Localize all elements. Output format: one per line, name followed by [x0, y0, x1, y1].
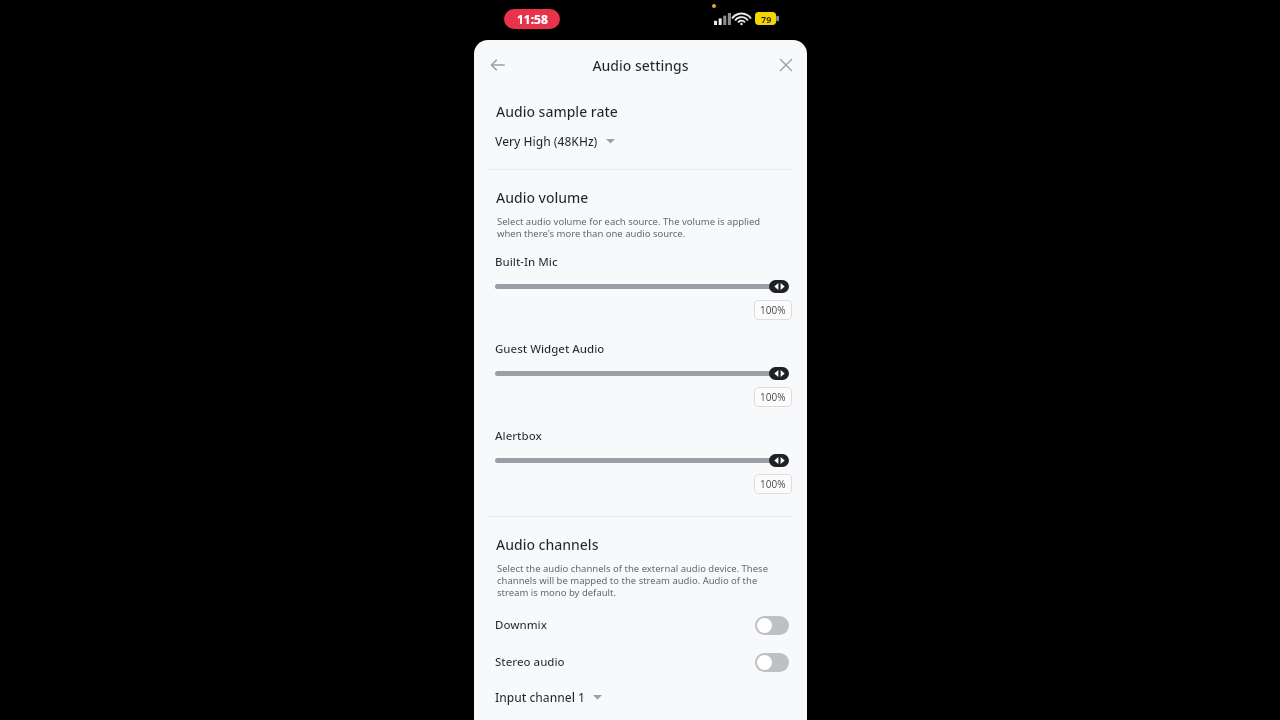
staticText: Downmix: [495, 617, 547, 633]
button[interactable]: Alertbox volume slider: [474, 452, 807, 468]
button[interactable]: Close: [771, 50, 801, 80]
staticText: Audio volume: [496, 188, 589, 207]
button[interactable]: Built-In Mic volume slider: [474, 278, 807, 294]
staticText: 100%: [760, 303, 786, 317]
staticText: Stereo audio: [495, 654, 565, 670]
staticText: Input channel 1: [495, 689, 585, 705]
button[interactable]: Guest Widget Audio volume slider: [474, 365, 807, 381]
staticText: Guest Widget Audio: [495, 341, 605, 357]
button[interactable]: Downmix: [474, 611, 807, 639]
button[interactable]: 100%: [754, 474, 792, 494]
staticText: Alertbox: [495, 428, 542, 444]
staticText: Audio settings: [592, 56, 689, 75]
staticText: Select the audio channels of the externa…: [497, 562, 781, 599]
button[interactable]: Back: [482, 49, 514, 81]
staticText: Audio sample rate: [496, 102, 618, 121]
button[interactable]: 100%: [754, 387, 792, 407]
staticText: 11:58: [517, 11, 548, 27]
button[interactable]: 100%: [754, 300, 792, 320]
staticText: 100%: [760, 477, 786, 491]
staticText: Audio channels: [496, 535, 599, 554]
staticText: 100%: [760, 390, 786, 404]
button[interactable]: Very High (48KHz): [474, 131, 807, 151]
button[interactable]: Input channel 1: [474, 687, 807, 707]
staticText: 79: [761, 13, 772, 25]
staticText: Built-In Mic: [495, 254, 558, 270]
staticText: Select audio volume for each source. The…: [497, 215, 779, 240]
button[interactable]: Stereo audio: [474, 648, 807, 676]
staticText: Very High (48KHz): [495, 133, 598, 149]
